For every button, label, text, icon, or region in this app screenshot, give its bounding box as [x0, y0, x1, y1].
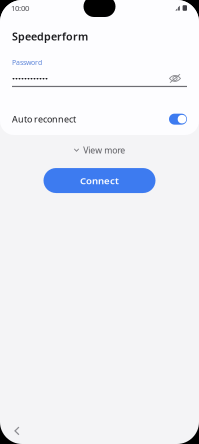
staticText: Auto reconnect [12, 113, 76, 125]
staticText: Speedperform [12, 29, 88, 43]
staticText: View more [83, 144, 125, 156]
button[interactable]: View more [68, 141, 131, 159]
button[interactable]: Auto reconnect [169, 114, 187, 125]
staticText: Connect [80, 174, 119, 187]
staticText: 10:00 [11, 3, 29, 13]
button[interactable]: Back [6, 420, 28, 442]
button[interactable]: Show password [169, 73, 187, 83]
button[interactable]: Connect [43, 168, 155, 193]
staticText: •••••••••••• [12, 73, 48, 84]
staticText: Password [12, 57, 42, 67]
